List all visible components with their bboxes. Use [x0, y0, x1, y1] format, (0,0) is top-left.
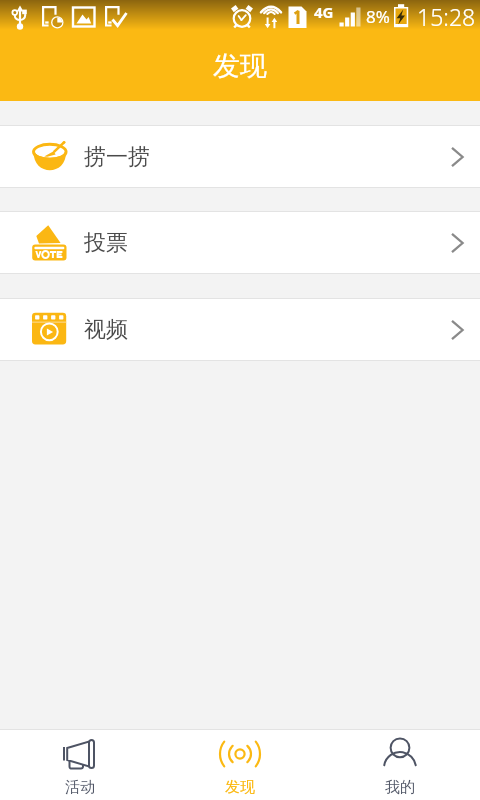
staticText: 15:28: [417, 1, 476, 32]
staticText: 视频: [84, 316, 128, 344]
button[interactable]: 投票: [0, 212, 480, 273]
staticText: 投票: [84, 229, 128, 257]
button[interactable]: 活动: [0, 730, 160, 800]
staticText: 发现: [213, 49, 267, 83]
button[interactable]: 捞一捞: [0, 126, 480, 187]
staticText: 我的: [385, 778, 415, 797]
staticText: 8%: [366, 5, 390, 28]
button[interactable]: 视频: [0, 299, 480, 360]
staticText: 活动: [65, 778, 95, 797]
staticText: 4G: [314, 2, 334, 22]
staticText: 捞一捞: [84, 143, 150, 171]
button[interactable]: 发现: [160, 730, 320, 800]
staticText: 发现: [225, 778, 255, 797]
button[interactable]: 我的: [320, 730, 480, 800]
